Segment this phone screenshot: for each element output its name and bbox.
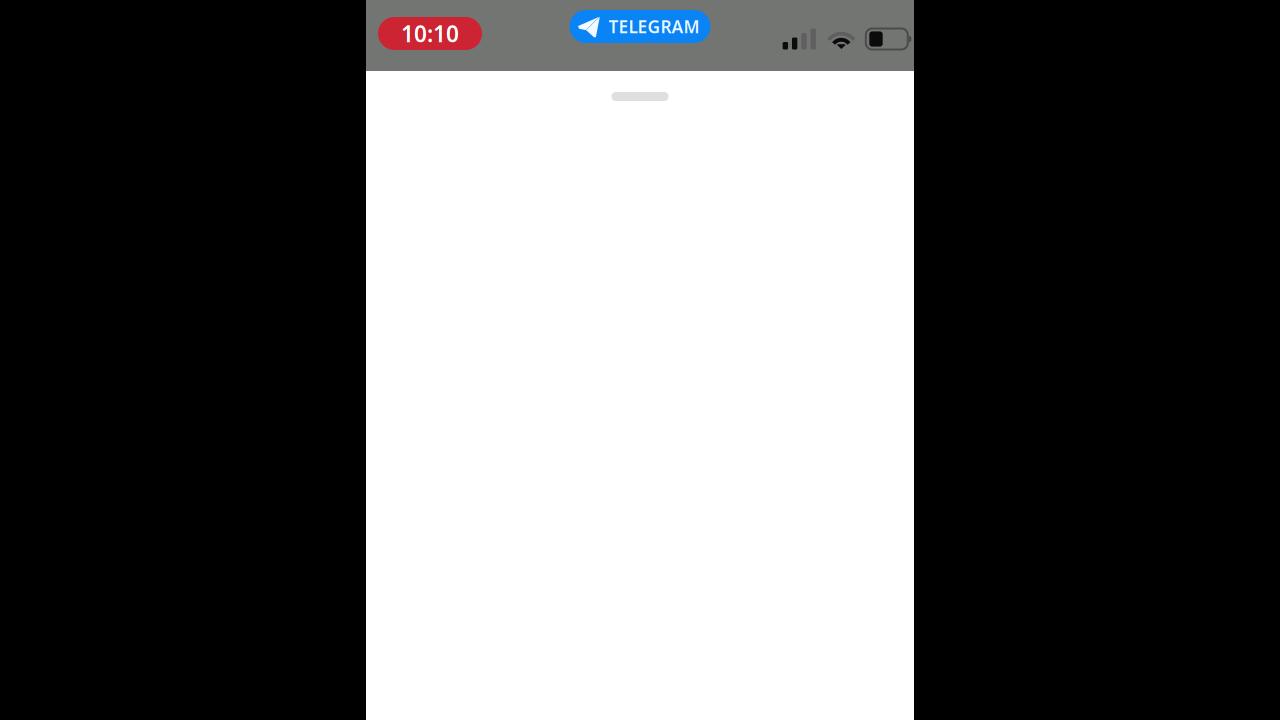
button[interactable]: Screen recording, 10:10 xyxy=(378,17,482,50)
button[interactable]: Telegram live activity xyxy=(569,10,710,43)
staticText: TELEGRAM xyxy=(608,15,699,38)
staticText: 10:10 xyxy=(401,18,459,48)
